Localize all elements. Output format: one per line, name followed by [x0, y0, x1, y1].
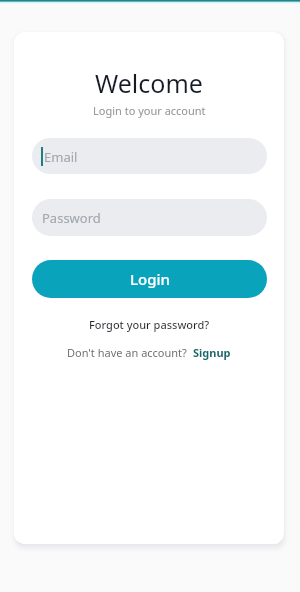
staticText: Welcome	[95, 66, 203, 100]
staticText: Login to your account	[93, 103, 206, 118]
staticText: Email	[44, 148, 78, 166]
button[interactable]: Password input field	[32, 199, 267, 236]
staticText: Login	[130, 269, 170, 289]
staticText: Signup	[193, 345, 231, 360]
button[interactable]: Email input field	[32, 138, 267, 174]
button[interactable]: Forgot your password?	[89, 317, 210, 332]
button[interactable]: Login	[32, 260, 267, 298]
button[interactable]: Signup	[193, 345, 231, 360]
staticText: Password	[42, 209, 101, 227]
staticText: Don't have an account?	[67, 345, 187, 360]
staticText: Forgot your password?	[89, 317, 210, 332]
